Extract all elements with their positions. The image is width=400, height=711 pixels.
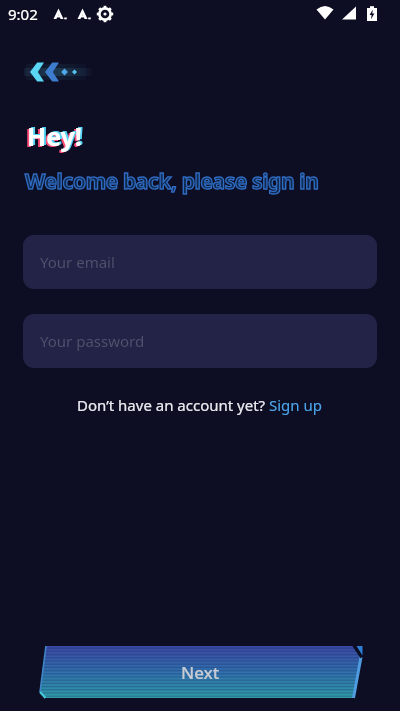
button[interactable]: Next	[0, 646, 400, 711]
button[interactable]: Your email	[23, 235, 377, 289]
button[interactable]	[24, 59, 96, 85]
staticText: 9:02	[8, 4, 38, 24]
staticText: Hey!	[25, 120, 80, 154]
button[interactable]: Don’t have an account yet? Sign up	[77, 395, 323, 415]
staticText: Welcome back, please sign in	[25, 167, 319, 196]
staticText: Welcome back, please sign in	[25, 167, 319, 196]
staticText: Your password	[40, 331, 145, 351]
staticText: Next	[181, 661, 220, 684]
button[interactable]: Your password	[23, 314, 377, 368]
staticText: Hey!	[29, 118, 84, 152]
staticText: Your email	[40, 252, 115, 272]
staticText: Hey!	[27, 119, 82, 153]
